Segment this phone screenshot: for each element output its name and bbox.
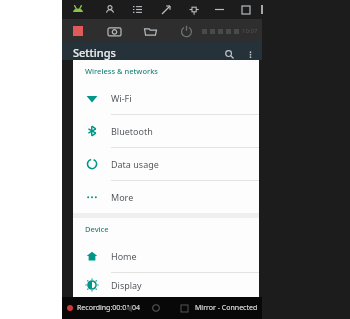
button[interactable]: Resize — [158, 2, 173, 17]
button[interactable]: Stop recording — [68, 21, 88, 41]
button[interactable]: Display — [73, 273, 259, 297]
button[interactable]: Pin — [186, 2, 201, 17]
staticText: Wireless & networks — [85, 66, 158, 76]
button[interactable]: Data usage — [73, 148, 259, 181]
button[interactable]: Android — [70, 2, 86, 18]
staticText: Data usage — [111, 158, 159, 170]
staticText: Display — [111, 279, 142, 291]
button[interactable]: Bluetooth — [73, 115, 259, 148]
button[interactable]: Home — [73, 240, 259, 273]
staticText: Bluetooth — [111, 125, 153, 137]
button[interactable]: Recents — [176, 300, 192, 316]
button[interactable]: More options — [243, 45, 257, 59]
staticText: Home — [111, 250, 137, 262]
button[interactable]: Back — [120, 300, 136, 316]
button[interactable]: Account — [102, 2, 117, 17]
staticText: Settings — [73, 45, 116, 60]
button[interactable]: Screenshot — [104, 21, 124, 41]
staticText: Recording:00:01:04 — [77, 303, 141, 313]
staticText: Device — [85, 224, 109, 234]
button[interactable]: Files — [140, 21, 160, 41]
button[interactable]: Power — [176, 21, 196, 41]
button[interactable]: Home — [148, 300, 164, 316]
button[interactable]: Sessions — [130, 2, 145, 17]
button[interactable]: Minimize — [212, 2, 227, 17]
button[interactable]: Search — [222, 45, 236, 59]
button[interactable]: Maximize — [238, 2, 253, 17]
staticText: Wi-Fi — [111, 92, 132, 104]
staticText: More — [111, 191, 134, 203]
button[interactable]: More — [73, 181, 259, 213]
staticText: 10:07 — [242, 27, 258, 35]
button[interactable]: Wi-Fi — [73, 82, 259, 115]
staticText: Mirror - Connected — [195, 303, 258, 313]
